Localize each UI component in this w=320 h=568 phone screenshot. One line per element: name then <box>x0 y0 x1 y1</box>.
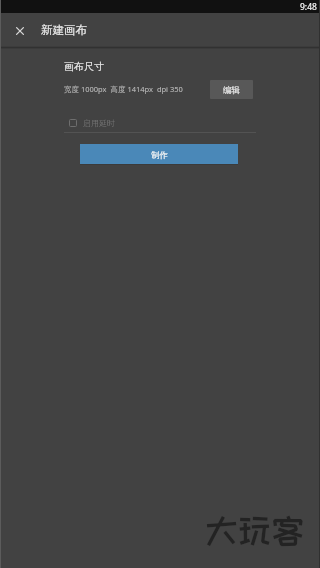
staticText: 画布尺寸 <box>64 60 104 73</box>
button[interactable]: 启用延时 <box>64 116 256 129</box>
staticText: 大玩客 <box>205 512 305 548</box>
button[interactable]: Close <box>8 19 31 42</box>
staticText: 启用延时 <box>83 118 115 128</box>
staticText: 制作 <box>151 150 168 161</box>
staticText: 9:48 <box>300 1 317 13</box>
button[interactable]: 制作 <box>80 144 238 164</box>
button[interactable]: 编辑 <box>210 80 253 99</box>
staticText: 新建画布 <box>41 23 87 37</box>
staticText: 编辑 <box>223 85 240 96</box>
staticText: 宽度 1000px 高度 1414px dpi 350 <box>64 84 183 94</box>
